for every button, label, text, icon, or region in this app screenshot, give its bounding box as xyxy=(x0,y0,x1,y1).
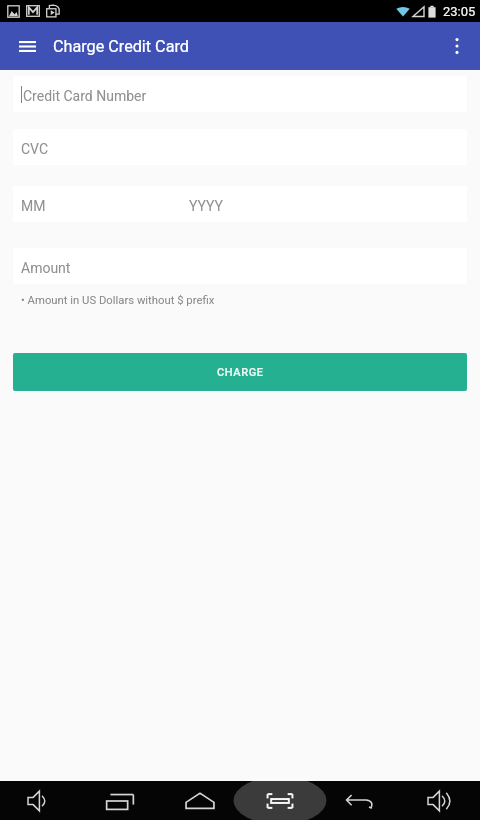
staticText: Charge Credit Card xyxy=(53,37,189,56)
button[interactable]: Credit Card Number xyxy=(13,76,467,112)
button[interactable]: Recent apps xyxy=(80,781,160,820)
button[interactable]: Back xyxy=(320,781,400,820)
button[interactable]: YYYY xyxy=(181,186,467,222)
button[interactable]: CVC xyxy=(13,129,467,165)
button[interactable]: Volume up xyxy=(400,781,480,820)
staticText: CHARGE xyxy=(217,366,264,379)
button[interactable]: CHARGE xyxy=(13,353,467,391)
staticText: Credit Card Number xyxy=(23,88,147,104)
staticText: Amount xyxy=(21,260,71,276)
button[interactable]: Volume down xyxy=(0,781,80,820)
button[interactable]: Navigation menu xyxy=(10,29,44,63)
staticText: MM xyxy=(21,198,46,214)
staticText: CVC xyxy=(21,141,49,157)
button[interactable]: MM xyxy=(13,186,181,222)
staticText: 23:05 xyxy=(443,4,476,19)
button[interactable]: Home xyxy=(160,781,240,820)
button[interactable]: Screenshot xyxy=(240,781,320,820)
staticText: • Amount in US Dollars without $ prefix xyxy=(21,294,215,307)
button[interactable]: More options xyxy=(439,28,475,64)
button[interactable]: Amount xyxy=(13,248,467,284)
staticText: YYYY xyxy=(189,198,224,214)
